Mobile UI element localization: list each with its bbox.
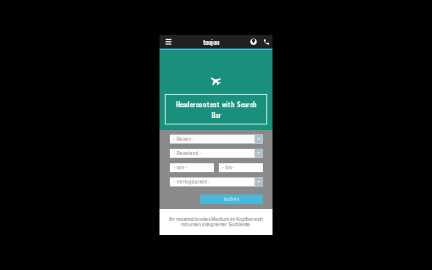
staticText: Ihr maximal breites Medium im Kopfbereic… (169, 217, 263, 227)
staticText: Headercontent with Search Bar (175, 98, 256, 120)
button[interactable]: Menu (162, 35, 175, 48)
button[interactable]: - Reiseland - (170, 149, 263, 158)
staticText: - Verfügbarkeit - (173, 179, 209, 184)
button[interactable]: - bis - (219, 163, 263, 172)
staticText: - von - (173, 165, 187, 170)
button[interactable]: - von - (170, 163, 214, 172)
button[interactable]: suchen (200, 194, 263, 204)
staticText: - Reisen - (173, 136, 194, 142)
button[interactable]: - Verfügbarkeit - (170, 177, 263, 186)
button[interactable]: Call us (260, 35, 272, 48)
staticText: - Reiseland - (173, 151, 201, 156)
staticText: suchen (223, 197, 239, 202)
staticText: toujou (203, 37, 219, 47)
button[interactable]: - Reisen - (170, 135, 263, 143)
staticText: - bis - (222, 165, 234, 170)
button[interactable]: Choose region (247, 35, 260, 48)
